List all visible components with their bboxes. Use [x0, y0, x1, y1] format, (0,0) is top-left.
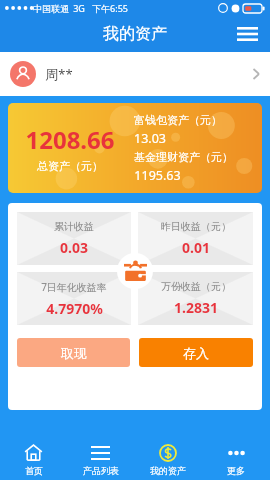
button[interactable]: 首页 [0, 438, 67, 480]
staticText: 基金理财资产（元） [134, 150, 233, 164]
staticText: 总资产（元） [37, 159, 103, 173]
staticText: 累计收益 [54, 220, 94, 233]
staticText: 产品列表 [83, 465, 119, 476]
staticText: 存入 [183, 345, 209, 361]
button[interactable]: 累计收益 [17, 212, 131, 265]
staticText: 首页 [25, 465, 43, 476]
staticText: 我的资产 [150, 465, 186, 476]
staticText: 昨日收益（元） [161, 220, 231, 233]
button[interactable]: 存入 [139, 338, 253, 367]
button[interactable]: 产品列表 [67, 438, 134, 480]
staticText: 7日年化收益率 [41, 280, 107, 294]
staticText: 0.03 [60, 238, 88, 257]
button[interactable]: 昨日收益（元） [138, 212, 253, 265]
button[interactable]: 万份收益（元） [138, 272, 253, 325]
button[interactable]: 我的资产 [134, 438, 202, 480]
button[interactable]: Menu [233, 20, 261, 48]
staticText: 周** [45, 65, 73, 83]
staticText: 4.7970% [46, 299, 103, 318]
button[interactable]: 取现 [17, 338, 130, 367]
staticText: 我的资产 [103, 24, 167, 44]
staticText: 下午6:55 [92, 2, 128, 14]
staticText: 中国联通 [33, 3, 69, 14]
staticText: 1195.63 [134, 167, 181, 184]
staticText: 更多 [227, 465, 245, 476]
button[interactable]: 7日年化收益率 [17, 272, 131, 325]
button[interactable]: 周** [0, 52, 270, 96]
staticText: 0.01 [182, 238, 210, 257]
staticText: 1208.66 [25, 123, 115, 156]
button[interactable]: 更多 [202, 438, 270, 480]
staticText: 3G [73, 2, 85, 14]
staticText: 13.03 [134, 130, 166, 147]
staticText: 万份收益（元） [161, 280, 231, 293]
button[interactable]: 1208.66 [8, 103, 262, 193]
staticText: 富钱包资产（元） [134, 113, 222, 127]
staticText: 1.2831 [174, 298, 218, 317]
staticText: 取现 [61, 345, 87, 361]
